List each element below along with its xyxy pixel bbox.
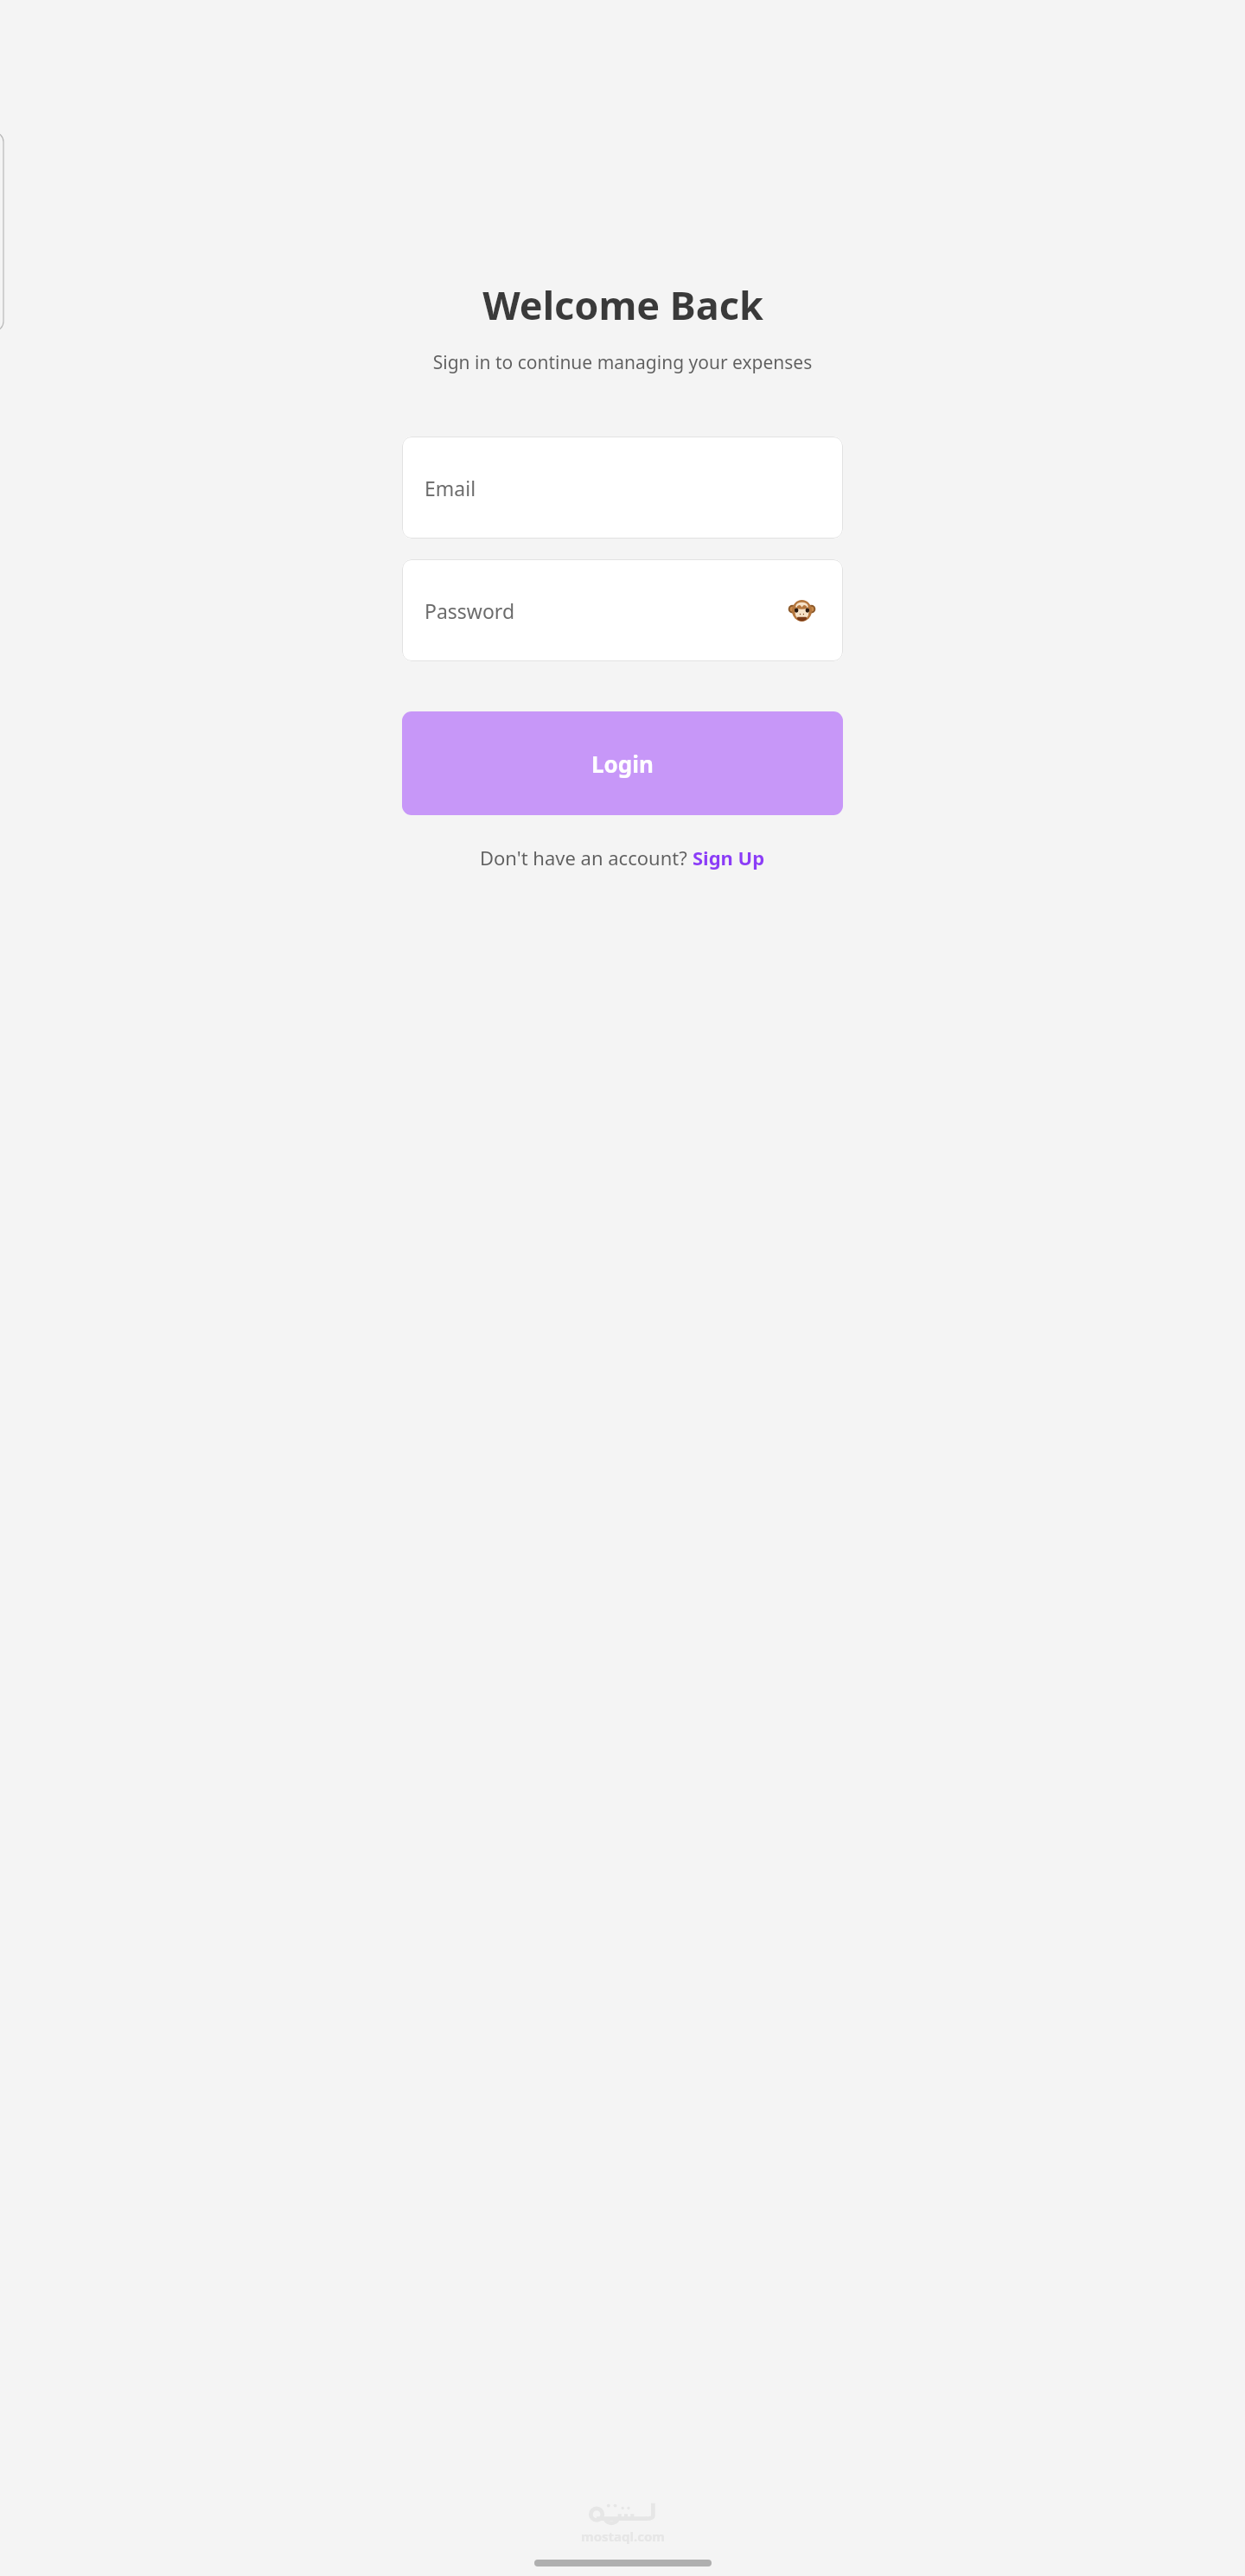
button[interactable]: Sign Up bbox=[693, 845, 765, 870]
staticText: Password bbox=[425, 597, 515, 624]
staticText: Welcome Back bbox=[482, 278, 763, 331]
button[interactable]: Email bbox=[402, 437, 843, 539]
staticText: Sign Up bbox=[693, 845, 765, 870]
staticText: Login bbox=[591, 749, 654, 779]
staticText: Don't have an account? bbox=[480, 845, 693, 870]
button[interactable]: Login bbox=[402, 711, 843, 815]
staticText: Email bbox=[425, 475, 476, 501]
staticText: Sign in to continue managing your expens… bbox=[52, 350, 1193, 375]
button[interactable]: Password bbox=[402, 559, 843, 661]
button[interactable]: Toggle password visibility bbox=[782, 591, 820, 629]
staticText: mostaql.com bbox=[581, 2528, 665, 2545]
